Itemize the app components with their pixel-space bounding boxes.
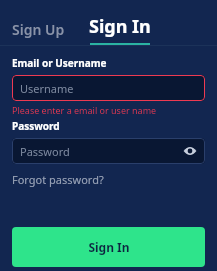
staticText: Email or Username [12,56,107,70]
staticText: Username [20,81,74,96]
button[interactable]: Sign Up [12,20,65,45]
button[interactable]: Sign In [89,14,151,45]
button[interactable]: Username [12,75,205,101]
staticText: Password [20,144,70,159]
staticText: Sign In [89,14,151,39]
staticText: Sign Up [12,20,65,39]
button[interactable]: Sign In [12,227,205,267]
button[interactable]: Show password [181,142,199,160]
staticText: Please enter a email or user name [12,104,157,116]
staticText: Sign In [88,239,130,255]
button[interactable]: Password [12,138,205,164]
staticText: Forgot password? [12,172,104,187]
button[interactable]: Forgot password? [12,172,104,187]
staticText: Password [12,119,60,133]
